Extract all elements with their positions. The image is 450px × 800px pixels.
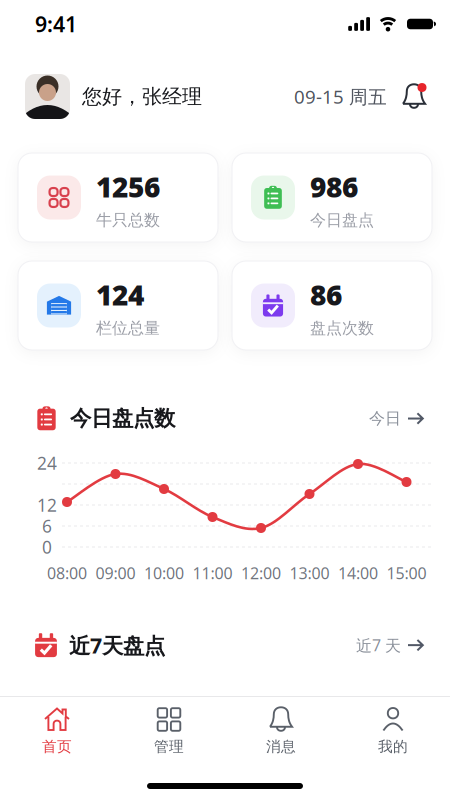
staticText: 今日 — [369, 409, 401, 428]
button[interactable]: Notifications — [401, 82, 427, 110]
staticText: 15:00 — [386, 562, 426, 584]
staticText: 6 — [42, 514, 52, 537]
staticText: 12:00 — [241, 562, 281, 584]
staticText: 0 — [42, 535, 52, 558]
button[interactable]: 近7 天 — [356, 634, 424, 656]
button[interactable]: 首页 — [1, 702, 113, 760]
staticText: 盘点次数 — [310, 318, 374, 338]
button[interactable]: 今日 — [369, 409, 424, 428]
staticText: 管理 — [154, 737, 184, 755]
staticText: 09:00 — [95, 562, 135, 584]
button[interactable]: 管理 — [113, 702, 225, 760]
button[interactable]: 1256 — [18, 153, 218, 242]
button[interactable]: 124 — [18, 261, 218, 350]
staticText: 124 — [96, 276, 144, 313]
staticText: 牛只总数 — [96, 210, 160, 230]
staticText: 1256 — [96, 168, 160, 205]
staticText: 14:00 — [338, 562, 378, 584]
staticText: 近7天盘点 — [69, 631, 165, 659]
staticText: 今日盘点 — [310, 210, 374, 230]
staticText: 09-15 周五 — [294, 84, 387, 109]
staticText: 今日盘点数 — [70, 405, 175, 432]
staticText: 首页 — [42, 737, 72, 755]
staticText: 24 — [37, 451, 57, 474]
staticText: 消息 — [266, 737, 296, 755]
staticText: 08:00 — [47, 562, 87, 584]
staticText: 9:41 — [35, 10, 77, 38]
staticText: 12 — [37, 493, 57, 516]
button[interactable]: 我的 — [337, 702, 449, 760]
staticText: 您好，张经理 — [82, 84, 202, 109]
button[interactable]: 986 — [232, 153, 432, 242]
button[interactable]: 消息 — [225, 702, 337, 760]
staticText: 近7 天 — [356, 634, 401, 656]
staticText: 10:00 — [144, 562, 184, 584]
staticText: 13:00 — [289, 562, 329, 584]
staticText: 986 — [310, 168, 358, 205]
staticText: 86 — [310, 276, 342, 313]
staticText: 11:00 — [192, 562, 232, 584]
staticText: 我的 — [378, 737, 408, 755]
button[interactable]: 86 — [232, 261, 432, 350]
staticText: 栏位总量 — [96, 318, 160, 338]
